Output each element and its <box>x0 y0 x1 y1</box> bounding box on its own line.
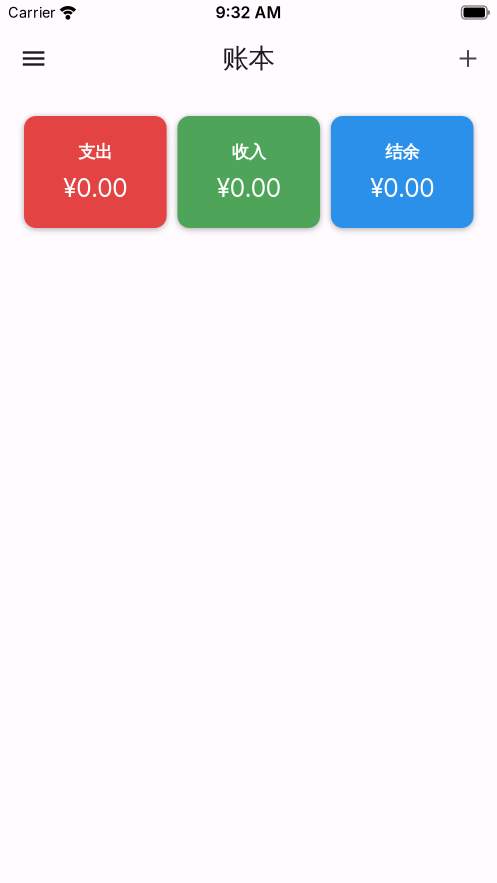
staticText: 账本 <box>222 42 274 75</box>
staticText: Carrier <box>8 4 55 21</box>
button[interactable]: Menu <box>0 25 54 92</box>
staticText: ¥0.00 <box>63 173 127 203</box>
staticText: ¥0.00 <box>370 173 434 203</box>
staticText: 结余 <box>385 141 419 163</box>
button[interactable]: Add <box>450 25 497 92</box>
staticText: ¥0.00 <box>217 173 281 203</box>
staticText: 9:32 AM <box>215 3 281 22</box>
staticText: 支出 <box>78 141 112 163</box>
staticText: 收入 <box>232 141 266 163</box>
